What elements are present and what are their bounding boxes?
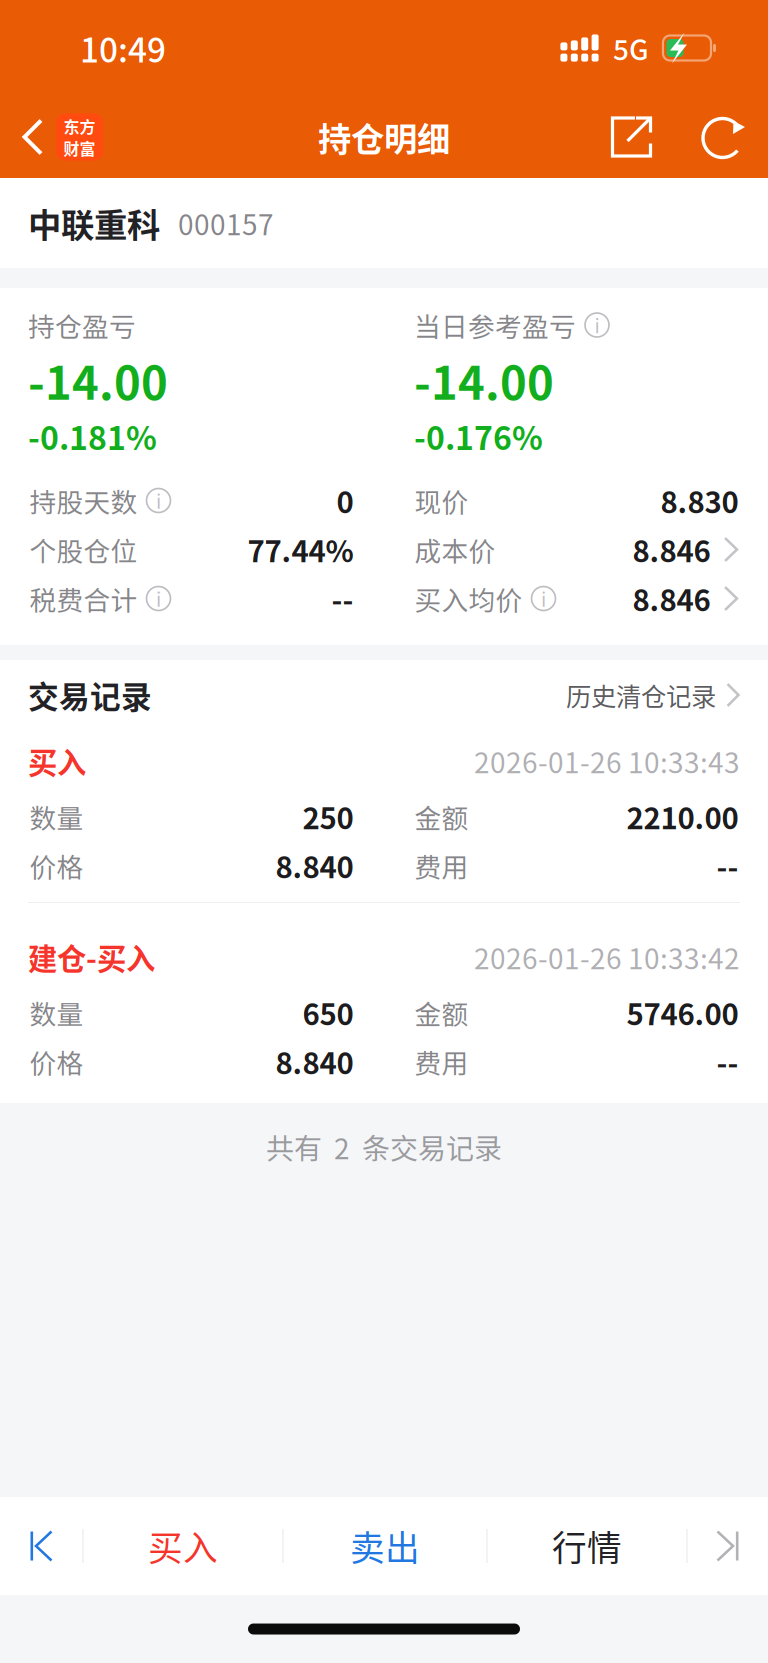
staticText: 持股天数 (29, 481, 137, 520)
staticText: 中联重科 (28, 199, 160, 247)
staticText: 10:49 (80, 24, 166, 72)
staticText: 77.44% (247, 528, 353, 571)
button[interactable]: 卖出 (283, 1497, 486, 1595)
button[interactable]: 买入 (83, 1497, 282, 1595)
staticText: 8.830 (660, 479, 738, 522)
staticText: 交易记录 (28, 673, 152, 717)
staticText: 250 (302, 795, 353, 838)
staticText: -- (716, 844, 738, 887)
button[interactable]: First page (0, 1497, 82, 1595)
staticText: 持仓盈亏 (28, 306, 136, 344)
staticText: -- (331, 577, 353, 620)
button[interactable]: 买入均价 (414, 574, 738, 623)
staticText: 价格 (29, 1042, 83, 1081)
staticText: 8.846 (632, 577, 710, 620)
button[interactable]: Refresh (691, 96, 756, 178)
staticText: 买入 (28, 740, 86, 782)
staticText: 财富 (63, 136, 95, 160)
staticText: 金额 (414, 797, 468, 836)
staticText: 0 (336, 479, 353, 522)
button[interactable]: Last page (687, 1497, 767, 1595)
staticText: 费用 (414, 1042, 468, 1081)
staticText: -14.00 (28, 347, 168, 413)
staticText: 建仓-买入 (28, 936, 155, 978)
staticText: i (594, 311, 599, 339)
staticText: i (541, 585, 546, 612)
staticText: 2026-01-26 10:33:43 (474, 741, 740, 781)
staticText: 数量 (29, 993, 83, 1032)
staticText: 当日参考盈亏 (414, 306, 576, 344)
staticText: 价格 (29, 846, 83, 885)
staticText: 历史清仓记录 (566, 677, 716, 713)
button[interactable]: Share (600, 96, 663, 178)
staticText: 税费合计 (29, 579, 137, 618)
staticText: 8.840 (275, 844, 353, 887)
staticText: -14.00 (414, 347, 554, 413)
button[interactable]: 成本价 (414, 525, 738, 574)
staticText: 数量 (29, 797, 83, 836)
staticText: 成本价 (414, 530, 495, 569)
staticText: 2026-01-26 10:33:42 (474, 937, 740, 977)
staticText: 8.846 (632, 528, 710, 571)
staticText: -0.181% (28, 413, 157, 459)
staticText: 持仓明细 (318, 113, 450, 161)
staticText: -0.176% (414, 413, 543, 459)
staticText: 650 (302, 991, 353, 1034)
staticText: 买入均价 (414, 579, 522, 618)
staticText: 个股仓位 (29, 530, 137, 569)
staticText: 东方 (63, 114, 95, 138)
staticText: 5746.00 (626, 991, 738, 1034)
staticText: 现价 (414, 481, 468, 520)
staticText: 2210.00 (626, 795, 738, 838)
staticText: 5G (613, 28, 649, 68)
staticText: 金额 (414, 993, 468, 1032)
staticText: i (156, 487, 161, 514)
staticText: 买入 (148, 1521, 218, 1571)
staticText: i (156, 585, 161, 612)
staticText: 卖出 (350, 1521, 420, 1571)
staticText: 共有 2 条交易记录 (266, 1127, 502, 1167)
button[interactable]: 历史清仓记录 (566, 677, 740, 713)
staticText: 行情 (552, 1521, 622, 1571)
staticText: -- (716, 1040, 738, 1083)
button[interactable]: 行情 (487, 1497, 686, 1595)
staticText: 费用 (414, 846, 468, 885)
staticText: 000157 (178, 203, 274, 243)
button[interactable]: Back to East Money (10, 96, 115, 178)
staticText: 8.840 (275, 1040, 353, 1083)
